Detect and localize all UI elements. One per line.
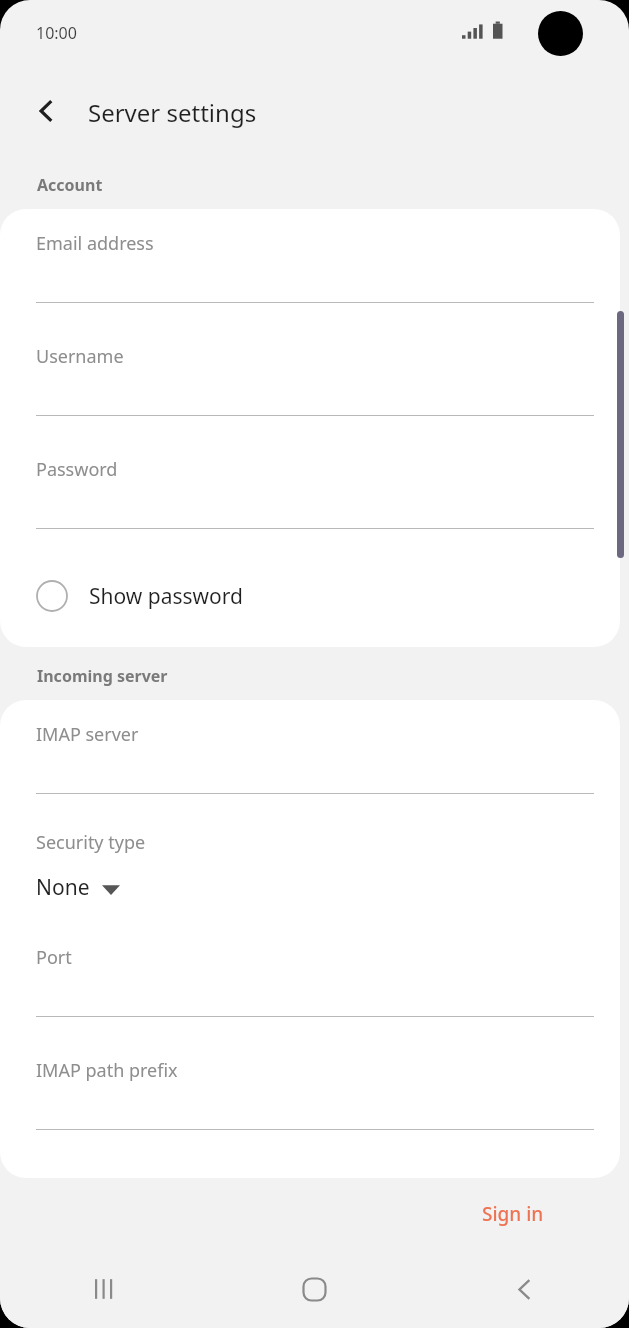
staticText: Sign in (482, 1201, 544, 1227)
button[interactable]: Show password (0, 565, 620, 627)
button[interactable]: IMAP server (0, 717, 620, 830)
staticText: Security type (36, 830, 146, 855)
staticText: Username (36, 344, 124, 369)
button[interactable]: Port (0, 940, 620, 1053)
button[interactable]: Back (419, 1250, 629, 1328)
button[interactable]: Back (22, 87, 70, 135)
staticText: Email address (36, 231, 154, 256)
button[interactable]: IMAP path prefix (0, 1053, 620, 1166)
button[interactable]: Email address (0, 226, 620, 339)
button[interactable]: Recent apps (0, 1250, 209, 1328)
staticText: Port (36, 945, 72, 970)
staticText: IMAP path prefix (36, 1058, 178, 1083)
staticText: Incoming server (37, 665, 168, 687)
staticText: IMAP server (36, 722, 139, 747)
staticText: Show password (89, 582, 243, 611)
staticText: Password (36, 457, 118, 482)
staticText: Server settings (88, 96, 257, 129)
button[interactable]: Username (0, 339, 620, 452)
button[interactable]: Home (209, 1250, 419, 1328)
button[interactable]: Sign in (470, 1193, 556, 1235)
staticText: None (36, 873, 90, 902)
staticText: 10:00 (36, 22, 77, 44)
button[interactable]: Security type (0, 830, 620, 940)
button[interactable]: Password (0, 452, 620, 565)
staticText: Account (37, 174, 103, 196)
